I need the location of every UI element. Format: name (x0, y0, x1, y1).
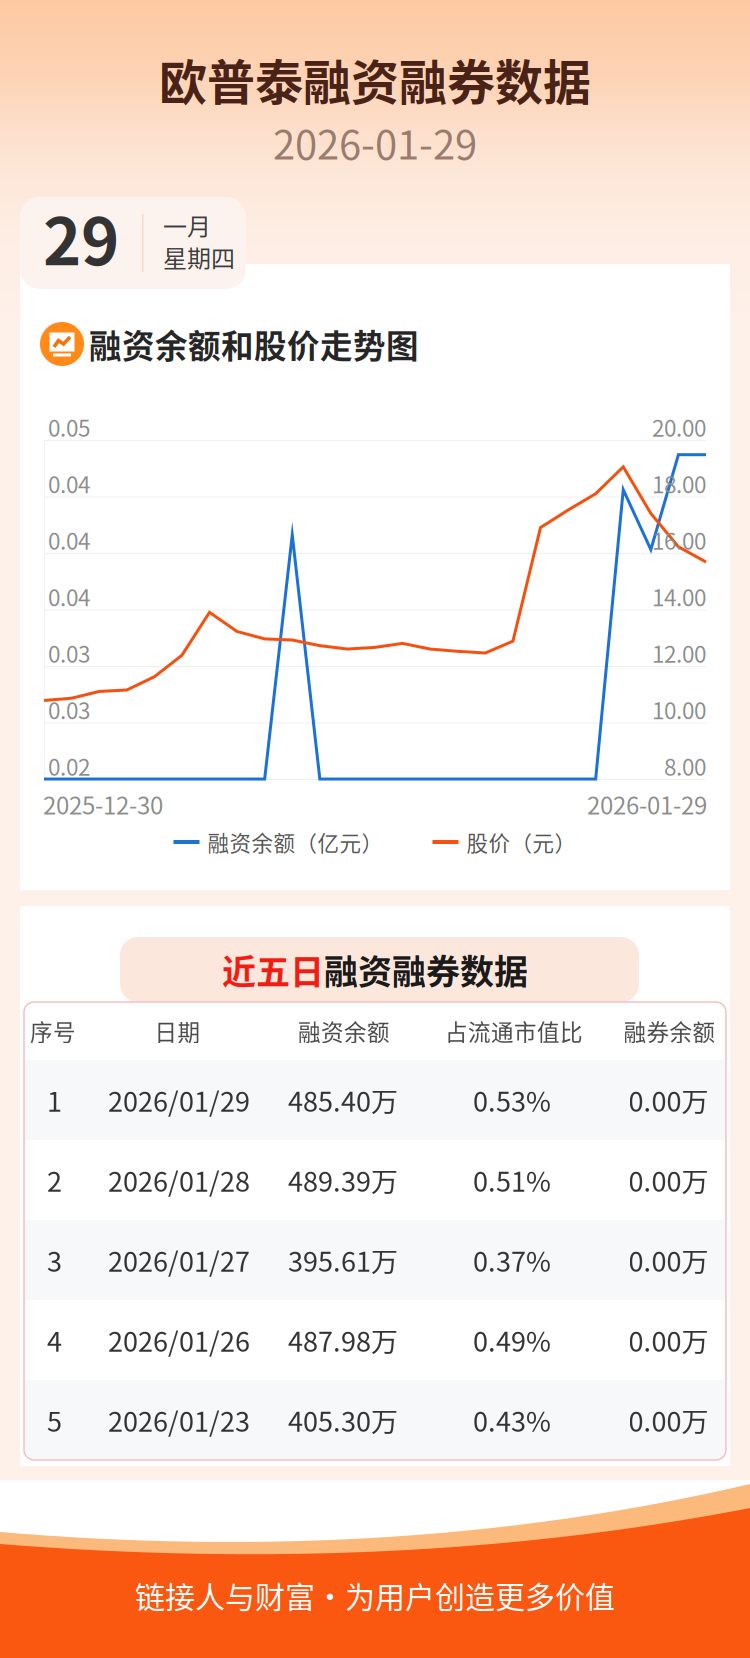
staticText: 0.03 (48, 637, 90, 669)
staticText: 融资融券数据 (324, 945, 528, 994)
staticText: 8.00 (664, 750, 706, 782)
button[interactable]: 链接人与财富·为用户创造更多价值 (0, 1570, 750, 1620)
staticText: 5 (47, 1400, 62, 1440)
staticText: 20.00 (652, 411, 706, 443)
staticText: 2026/01/23 (108, 1400, 250, 1440)
staticText: 近五日 (222, 945, 324, 994)
staticText: 2026/01/27 (108, 1240, 250, 1280)
staticText: 0.53% (473, 1080, 551, 1120)
staticText: 股价（元） (466, 826, 576, 857)
staticText: 0.00万 (628, 1160, 708, 1200)
staticText: 星期四 (163, 240, 235, 274)
staticText: 2026-01-29 (587, 787, 707, 821)
staticText: 4 (47, 1320, 62, 1360)
staticText: 10.00 (652, 693, 706, 726)
staticText: 0.37% (473, 1240, 551, 1280)
staticText: 0.00万 (628, 1320, 708, 1360)
staticText: 0.04 (48, 467, 90, 500)
staticText: 18.00 (652, 467, 706, 500)
staticText: 欧普泰融资融券数据 (159, 44, 591, 114)
staticText: 一月 (163, 208, 211, 242)
staticText: 日期 (154, 1015, 200, 1047)
staticText: 0.05 (48, 411, 90, 443)
staticText: 序号 (30, 1015, 76, 1047)
staticText: 链接人与财富·为用户创造更多价值 (135, 1573, 615, 1617)
staticText: 0.00万 (628, 1240, 708, 1280)
staticText: 0.43% (473, 1400, 551, 1440)
staticText: 融资余额和股价走势图 (89, 320, 419, 368)
staticText: 2026/01/28 (108, 1160, 250, 1200)
staticText: 占流通市值比 (445, 1015, 583, 1047)
staticText: 0.03 (48, 693, 90, 726)
staticText: 0.00万 (628, 1400, 708, 1440)
staticText: 489.39万 (288, 1160, 398, 1200)
staticText: 融券余额 (623, 1015, 715, 1047)
staticText: 14.00 (652, 580, 706, 613)
staticText: 0.49% (473, 1320, 551, 1360)
staticText: 395.61万 (288, 1240, 398, 1280)
staticText: 16.00 (652, 524, 706, 556)
staticText: 0.02 (48, 750, 90, 782)
staticText: 0.04 (48, 580, 90, 613)
staticText: 2026/01/26 (108, 1320, 250, 1360)
staticText: 融资余额（亿元） (207, 826, 383, 857)
staticText: 3 (47, 1240, 62, 1280)
staticText: 29 (43, 190, 119, 284)
staticText: 405.30万 (288, 1400, 398, 1440)
staticText: 12.00 (652, 637, 706, 669)
staticText: 融资余额 (298, 1015, 390, 1047)
staticText: 0.51% (473, 1160, 551, 1200)
staticText: 0.04 (48, 524, 90, 556)
staticText: 2 (47, 1160, 62, 1200)
staticText: 0.00万 (628, 1080, 708, 1120)
staticText: 2025-12-30 (43, 787, 163, 821)
staticText: 487.98万 (288, 1320, 398, 1360)
staticText: 1 (47, 1080, 62, 1120)
staticText: 485.40万 (288, 1080, 398, 1120)
staticText: 2026/01/29 (108, 1080, 250, 1120)
staticText: 2026-01-29 (273, 113, 477, 171)
